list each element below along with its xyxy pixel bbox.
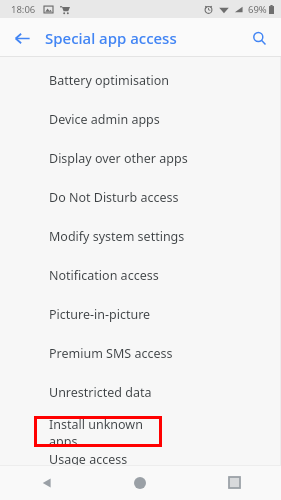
button[interactable]: Modify system settings xyxy=(0,217,281,256)
button[interactable]: Install unknown apps xyxy=(0,412,281,451)
button[interactable]: Usage access xyxy=(0,451,281,465)
staticText: Battery optimisation xyxy=(49,72,169,89)
staticText: 69% xyxy=(248,3,267,16)
staticText: Notification access xyxy=(49,267,159,284)
button[interactable]: Battery optimisation xyxy=(0,61,281,100)
button[interactable]: Unrestricted data xyxy=(0,373,281,412)
button[interactable]: Back xyxy=(8,24,36,52)
button[interactable]: Search xyxy=(245,24,273,52)
button[interactable]: Picture-in-picture xyxy=(0,295,281,334)
button[interactable]: Display over other apps xyxy=(0,139,281,178)
button[interactable]: Premium SMS access xyxy=(0,334,281,373)
button[interactable]: Notification access xyxy=(0,256,281,295)
staticText: 18:06 xyxy=(11,3,36,16)
staticText: Unrestricted data xyxy=(49,384,152,401)
staticText: Display over other apps xyxy=(49,150,188,167)
staticText: Usage access xyxy=(49,451,128,465)
staticText: Picture-in-picture xyxy=(49,306,151,323)
button[interactable]: Home xyxy=(93,465,187,500)
button[interactable]: Back xyxy=(0,465,93,500)
button[interactable]: Device admin apps xyxy=(0,100,281,139)
staticText: Premium SMS access xyxy=(49,345,173,362)
staticText: Special app access xyxy=(45,28,177,48)
button[interactable]: Recent apps xyxy=(187,465,281,500)
staticText: Install unknown apps xyxy=(49,416,162,447)
button[interactable]: Do Not Disturb access xyxy=(0,178,281,217)
staticText: Device admin apps xyxy=(49,111,160,128)
staticText: Do Not Disturb access xyxy=(49,189,179,206)
staticText: Modify system settings xyxy=(49,228,185,245)
